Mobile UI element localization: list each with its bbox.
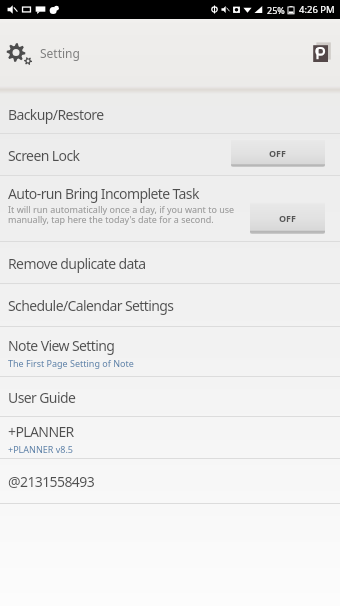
staticText: Auto-run Bring Incomplete Task — [8, 184, 199, 203]
button[interactable]: Auto-run Bring Incomplete Task — [0, 176, 340, 242]
staticText: Note View Setting — [8, 336, 115, 355]
button[interactable]: @2131558493 — [0, 459, 340, 504]
button[interactable]: User Guide — [0, 377, 340, 417]
staticText: Screen Lock — [8, 146, 80, 165]
button[interactable]: Note View Setting — [0, 327, 340, 377]
staticText: Schedule/Calendar Settings — [8, 296, 174, 315]
staticText: 4:26 PM — [299, 3, 335, 16]
button[interactable]: Schedule/Calendar Settings — [0, 284, 340, 327]
staticText: OFF — [279, 212, 297, 224]
button[interactable]: OFF — [250, 202, 325, 234]
staticText: +PLANNER — [8, 422, 74, 441]
button[interactable]: Screen Lock — [0, 134, 340, 176]
button[interactable]: +PLANNER — [0, 417, 340, 459]
staticText: +PLANNER v8.5 — [8, 443, 73, 455]
staticText: Setting — [40, 45, 80, 61]
staticText: Backup/Restore — [8, 105, 104, 124]
staticText: @2131558493 — [8, 472, 95, 491]
button[interactable]: Planner — [305, 35, 339, 69]
staticText: It will run automatically once a day, if… — [8, 203, 242, 226]
staticText: 25% — [267, 4, 285, 16]
button[interactable]: Remove duplicate data — [0, 242, 340, 284]
staticText: The First Page Setting of Note — [8, 357, 134, 369]
staticText: OFF — [269, 147, 287, 159]
button[interactable]: OFF — [231, 139, 325, 167]
staticText: User Guide — [8, 388, 76, 407]
staticText: Remove duplicate data — [8, 254, 146, 273]
button[interactable]: Backup/Restore — [0, 94, 340, 134]
